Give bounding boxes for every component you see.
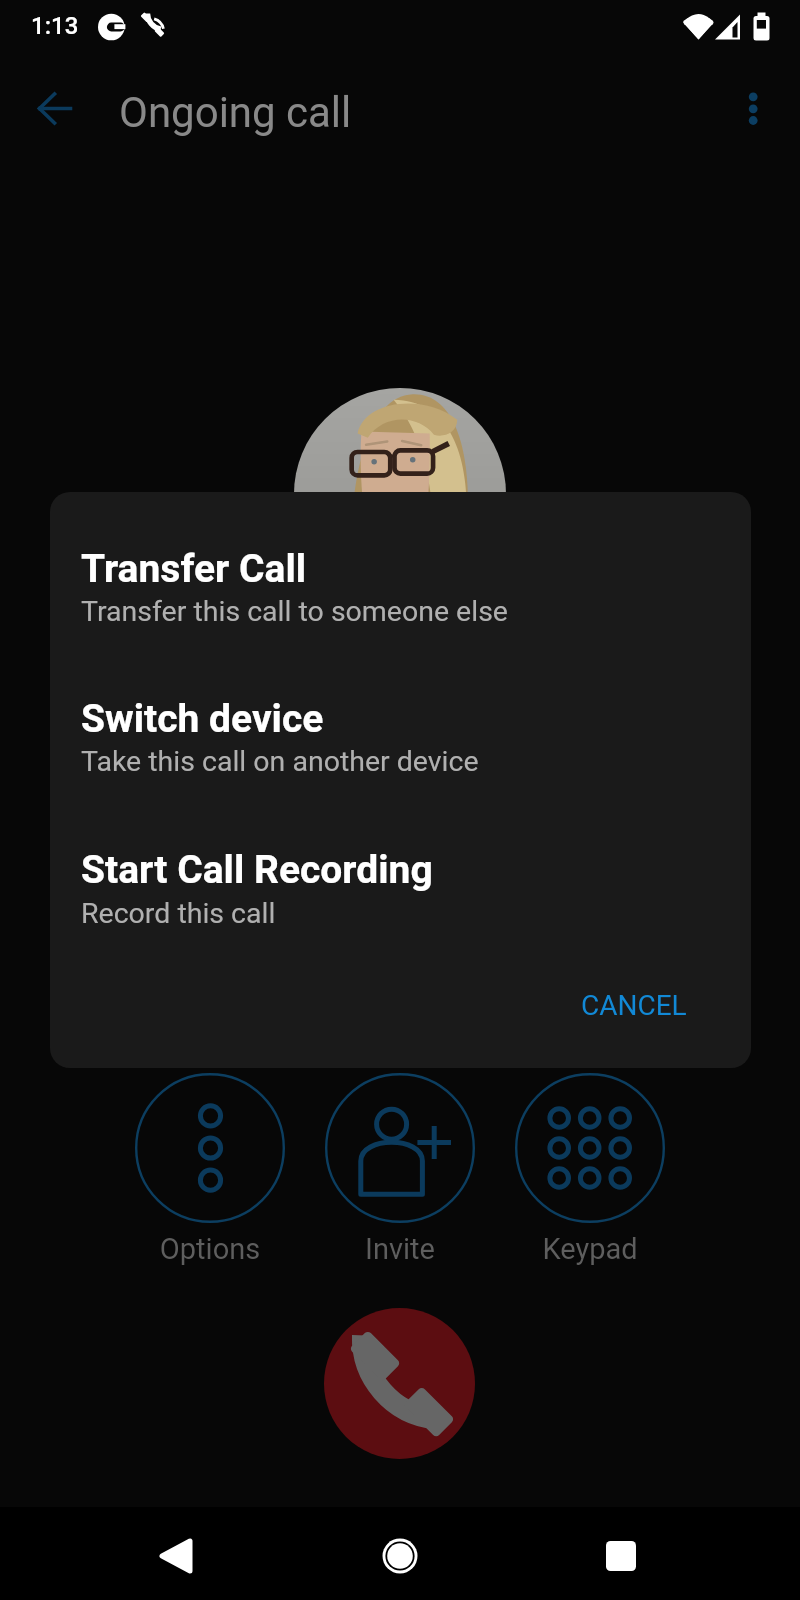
button[interactable]: Recent apps bbox=[571, 1507, 671, 1600]
button[interactable]: Back bbox=[126, 1507, 226, 1600]
staticText: Keypad bbox=[505, 1232, 675, 1266]
button[interactable]: End call bbox=[324, 1308, 475, 1459]
staticText: Transfer this call to someone else bbox=[81, 595, 508, 628]
staticText: 1:13 bbox=[31, 12, 79, 40]
staticText: Ongoing call bbox=[119, 88, 352, 137]
button[interactable]: Navigate up bbox=[22, 76, 86, 140]
button[interactable]: More options bbox=[725, 78, 781, 134]
staticText: Record this call bbox=[81, 897, 276, 930]
button[interactable]: Options bbox=[125, 1073, 295, 1266]
button[interactable]: Switch device bbox=[50, 672, 751, 784]
staticText: Switch device bbox=[81, 696, 324, 742]
staticText: Start Call Recording bbox=[81, 847, 433, 893]
button[interactable]: Transfer Call bbox=[50, 522, 751, 634]
button[interactable]: Home bbox=[350, 1507, 450, 1600]
staticText: Options bbox=[125, 1232, 295, 1266]
button[interactable]: CANCEL bbox=[561, 966, 707, 1044]
staticText: Invite bbox=[315, 1232, 485, 1266]
button[interactable]: Invite bbox=[315, 1073, 485, 1266]
staticText: Take this call on another device bbox=[81, 745, 479, 778]
button[interactable]: Keypad bbox=[505, 1073, 675, 1266]
staticText: Transfer Call bbox=[81, 546, 307, 592]
staticText: CANCEL bbox=[581, 989, 687, 1022]
button[interactable]: Start Call Recording bbox=[50, 823, 751, 935]
